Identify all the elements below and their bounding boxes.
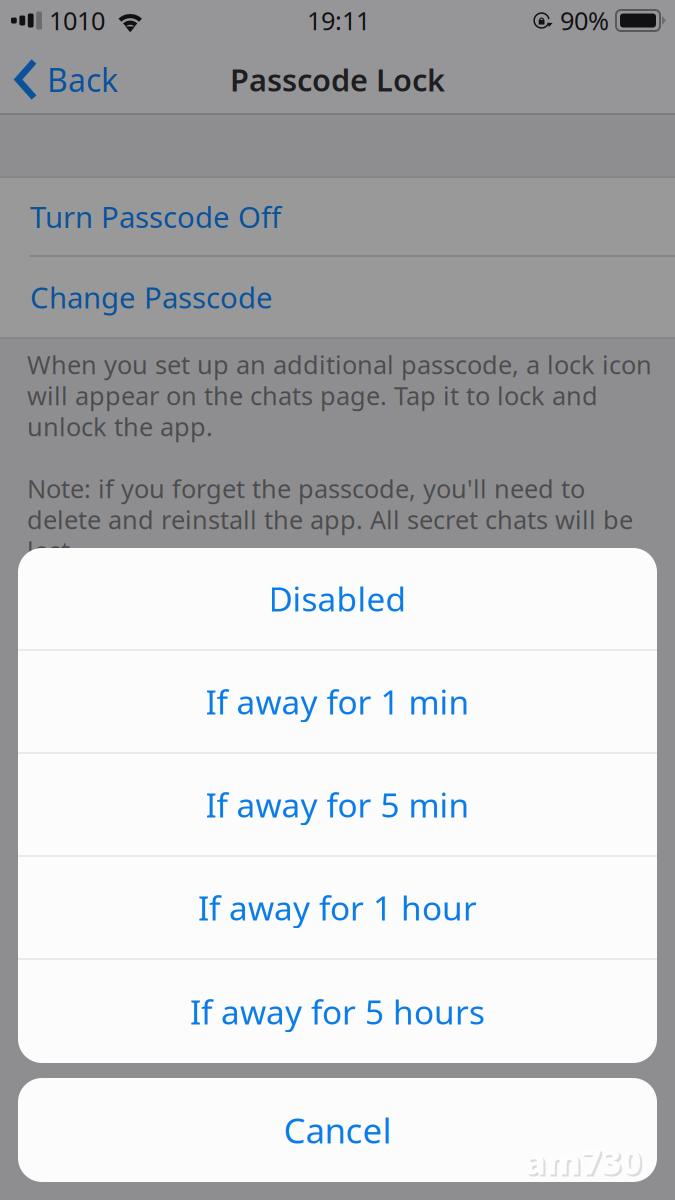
button[interactable]: Disabled [18,548,657,651]
button[interactable]: If away for 1 hour [18,857,657,960]
button[interactable]: If away for 1 min [18,651,657,754]
staticText: delete and reinstall the app. All secret… [27,503,633,536]
button[interactable]: Change Passcode [0,257,675,337]
staticText: will appear on the chats page. Tap it to… [27,379,598,412]
staticText: 19:11 [307,4,370,37]
staticText: If away for 1 min [205,679,469,724]
staticText: If away for 1 hour [198,885,477,930]
staticText: Turn Passcode Off [30,197,281,236]
staticText: Note: if you forget the passcode, you'll… [27,472,585,505]
button[interactable]: If away for 5 hours [18,960,657,1063]
staticText: am730 [524,1138,641,1184]
staticText: lost. [27,534,77,567]
button[interactable]: Cancel [18,1078,657,1182]
staticText: Disabled [268,576,406,621]
button[interactable]: If away for 5 min [18,754,657,857]
button[interactable]: Turn Passcode Off [0,178,675,257]
staticText: Change Passcode [30,277,273,316]
staticText: If away for 5 hours [190,989,485,1034]
staticText: unlock the app. [27,410,213,443]
staticText: 90% [560,4,609,37]
staticText: 1010 [49,4,105,37]
staticText: Passcode Lock [230,59,445,100]
button[interactable]: Back [0,48,130,110]
staticText: am730 [526,1140,643,1186]
staticText: Back [47,58,118,101]
staticText: When you set up an additional passcode, … [27,348,652,381]
staticText: If away for 5 min [205,782,469,827]
staticText: Cancel [283,1107,391,1153]
